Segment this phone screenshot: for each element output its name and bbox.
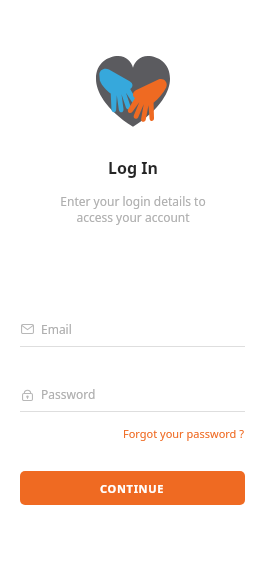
staticText: Forgot your password ? <box>123 426 245 441</box>
staticText: Enter your login details to access your … <box>60 193 206 225</box>
staticText: Log In <box>108 157 158 179</box>
other: Password <box>20 387 34 401</box>
staticText: Password <box>41 386 96 402</box>
button[interactable]: CONTINUE <box>20 471 245 505</box>
button[interactable]: Forgot your password ? <box>123 424 245 443</box>
other: Email <box>20 322 34 336</box>
staticText: Email <box>41 321 72 337</box>
staticText: CONTINUE <box>100 481 165 496</box>
button[interactable]: Password <box>20 386 245 412</box>
button[interactable]: Email <box>20 321 245 347</box>
